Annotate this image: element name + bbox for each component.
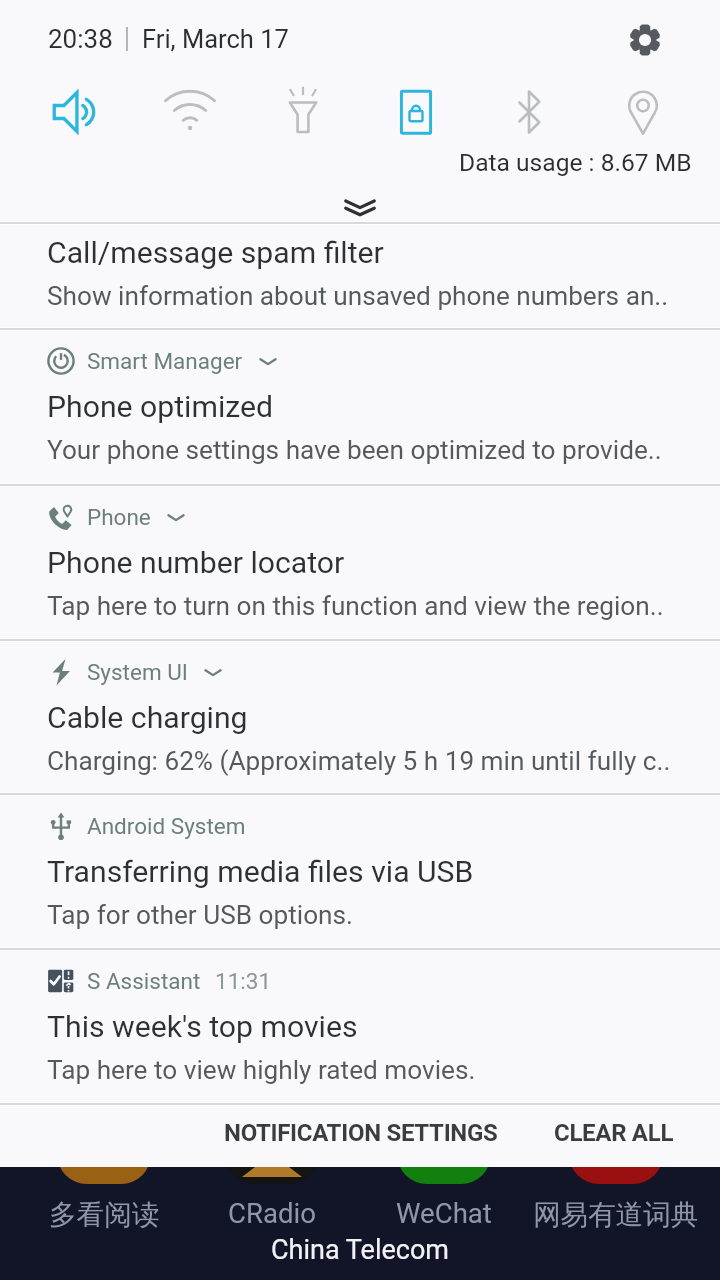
staticText: Phone bbox=[87, 504, 151, 530]
staticText: Your phone settings have been optimized … bbox=[47, 435, 662, 466]
button[interactable]: CRadio bbox=[225, 1096, 319, 1184]
staticText: CRadio bbox=[228, 1197, 316, 1229]
button[interactable]: WeChat bbox=[397, 1096, 491, 1184]
button[interactable]: Wi-Fi bbox=[154, 76, 226, 148]
staticText: Tap here to view highly rated movies. bbox=[47, 1055, 476, 1086]
staticText: Transferring media files via USB bbox=[47, 854, 474, 889]
staticText: CLEAR ALL bbox=[554, 1119, 674, 1147]
staticText: 11:31 bbox=[215, 968, 272, 994]
button[interactable]: Sound bbox=[42, 76, 114, 148]
staticText: Smart Manager bbox=[87, 348, 243, 374]
button[interactable]: System UI bbox=[0, 640, 720, 793]
staticText: Charging: 62% (Approximately 5 h 19 min … bbox=[47, 746, 671, 777]
staticText: Data usage : 8.67 MB bbox=[459, 148, 692, 177]
button[interactable]: Settings bbox=[617, 12, 673, 68]
staticText: Tap for other USB options. bbox=[47, 900, 353, 931]
button[interactable]: 多看阅读 bbox=[57, 1096, 151, 1184]
staticText: System UI bbox=[87, 659, 188, 685]
button[interactable]: 网易有道词典 bbox=[569, 1096, 663, 1184]
button[interactable]: Phone bbox=[0, 485, 720, 639]
staticText: Tap here to turn on this function and vi… bbox=[47, 591, 664, 622]
staticText: Cable charging bbox=[47, 700, 248, 735]
button[interactable]: Bluetooth bbox=[493, 76, 565, 148]
staticText: China Telecom bbox=[271, 1234, 449, 1266]
button[interactable]: Flashlight bbox=[267, 76, 339, 148]
staticText: Phone optimized bbox=[47, 389, 274, 424]
button[interactable]: CLEAR ALL bbox=[526, 1104, 701, 1162]
staticText: Android System bbox=[87, 813, 246, 839]
staticText: NOTIFICATION SETTINGS bbox=[224, 1119, 498, 1147]
staticText: S Assistant bbox=[87, 968, 201, 994]
button[interactable]: NOTIFICATION SETTINGS bbox=[196, 1104, 526, 1162]
button[interactable]: Android System bbox=[0, 794, 720, 948]
staticText: Fri, March 17 bbox=[142, 24, 289, 54]
staticText: 网易有道词典 bbox=[533, 1197, 699, 1232]
button[interactable]: Call/message spam filter bbox=[0, 223, 720, 328]
button[interactable]: S Assistant bbox=[0, 949, 720, 1103]
button[interactable]: Screen lock bbox=[380, 76, 452, 148]
staticText: WeChat bbox=[396, 1197, 492, 1229]
button[interactable]: Location bbox=[607, 76, 679, 148]
staticText: Phone number locator bbox=[47, 545, 345, 580]
button[interactable]: Expand bbox=[320, 192, 400, 226]
staticText: 多看阅读 bbox=[49, 1197, 160, 1232]
staticText: Show information about unsaved phone num… bbox=[47, 281, 669, 312]
staticText: 20:38 bbox=[48, 24, 113, 54]
staticText: Call/message spam filter bbox=[47, 235, 384, 270]
staticText: This week's top movies bbox=[47, 1009, 358, 1044]
button[interactable]: Smart Manager bbox=[0, 329, 720, 484]
